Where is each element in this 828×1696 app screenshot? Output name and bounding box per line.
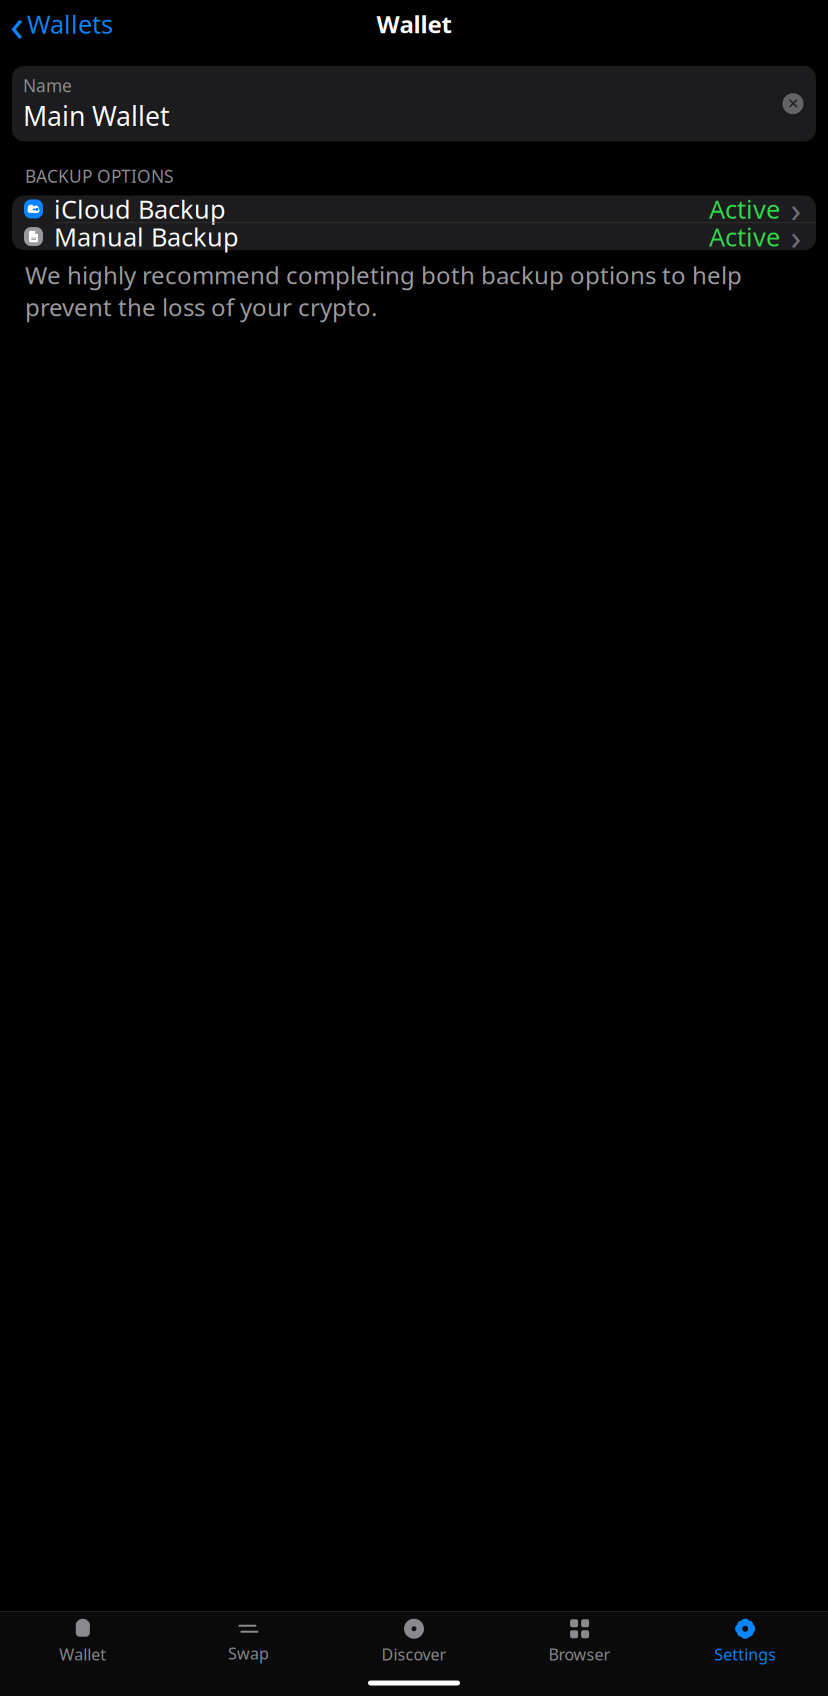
button[interactable]: Discover xyxy=(331,1619,497,1665)
staticText: Name xyxy=(23,74,72,97)
staticText: Main Wallet xyxy=(23,98,170,133)
staticText: Active xyxy=(709,192,780,226)
staticText: ✕ xyxy=(787,95,799,112)
staticText: iCloud Backup xyxy=(54,192,226,226)
staticText: Wallets xyxy=(27,7,113,41)
staticText: Wallet xyxy=(376,8,451,40)
staticText: Active xyxy=(709,220,780,253)
staticText: ‹ xyxy=(10,0,24,54)
staticText: Wallet xyxy=(59,1644,106,1665)
button[interactable]: iCloud Backup xyxy=(12,195,816,222)
button[interactable]: Settings xyxy=(662,1619,828,1665)
button[interactable]: Browser xyxy=(497,1619,662,1665)
button[interactable]: Wallet xyxy=(0,1619,166,1665)
button[interactable]: Swap xyxy=(166,1620,331,1664)
staticText: Manual Backup xyxy=(54,220,239,253)
staticText: Discover xyxy=(381,1644,446,1665)
staticText: BACKUP OPTIONS xyxy=(25,164,174,187)
staticText: › xyxy=(790,213,801,259)
button[interactable]: Manual Backup xyxy=(12,223,816,250)
staticText: Browser xyxy=(549,1644,611,1665)
staticText: › xyxy=(790,186,801,232)
button[interactable]: ‹ xyxy=(4,3,119,45)
staticText: We highly recommend completing both back… xyxy=(25,259,742,323)
staticText: Swap xyxy=(228,1643,269,1664)
button[interactable]: Clear name xyxy=(777,88,809,120)
staticText: Settings xyxy=(714,1644,776,1665)
